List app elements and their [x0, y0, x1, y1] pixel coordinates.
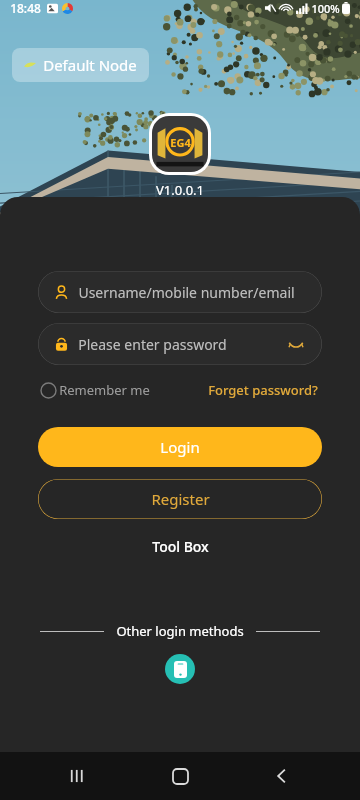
- button[interactable]: Recents: [54, 752, 102, 800]
- staticText: EG4: [170, 135, 191, 150]
- staticText: 18:48: [10, 0, 41, 16]
- staticText: Remember me: [59, 381, 150, 399]
- button[interactable]: Forget password?: [206, 379, 320, 401]
- staticText: 100%: [311, 1, 340, 16]
- button[interactable]: Show password: [286, 334, 306, 354]
- button[interactable]: Default Node: [12, 48, 149, 82]
- staticText: Register: [151, 489, 210, 509]
- staticText: Other login methods: [116, 622, 244, 640]
- staticText: Please enter password: [78, 335, 227, 354]
- button[interactable]: Back: [258, 752, 306, 800]
- button[interactable]: Remember me: [40, 381, 150, 399]
- button[interactable]: Home: [156, 752, 204, 800]
- button[interactable]: Please enter password: [38, 323, 322, 365]
- staticText: Login: [160, 437, 200, 457]
- staticText: Default Node: [43, 55, 137, 75]
- button[interactable]: Login: [38, 427, 322, 467]
- button[interactable]: Tool Box: [0, 533, 360, 560]
- staticText: Username/mobile number/email: [78, 283, 295, 302]
- staticText: Tool Box: [152, 537, 209, 556]
- button[interactable]: Login with device: [165, 654, 195, 684]
- button[interactable]: Register: [38, 479, 322, 519]
- staticText: V1.0.0.1: [156, 181, 204, 199]
- staticText: Forget password?: [208, 381, 318, 399]
- button[interactable]: Username/mobile number/email: [38, 271, 322, 313]
